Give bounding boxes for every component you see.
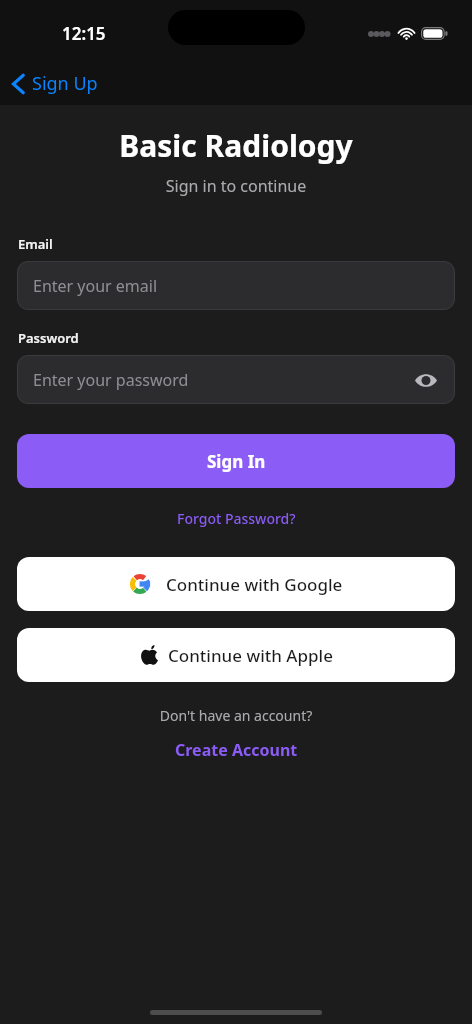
staticText: Email	[18, 235, 53, 253]
staticText: Continue with Apple	[168, 644, 333, 667]
staticText: Continue with Google	[166, 573, 343, 596]
button[interactable]: Continue with Apple	[17, 628, 455, 682]
button[interactable]: Show password	[409, 363, 443, 397]
staticText: 12:15	[62, 22, 106, 45]
button[interactable]: Continue with Google	[17, 557, 455, 611]
button[interactable]: Forgot Password?	[169, 506, 304, 531]
staticText: Don't have an account?	[0, 706, 472, 725]
staticText: Password	[18, 329, 79, 347]
staticText: Sign in to continue	[0, 175, 472, 197]
staticText: Enter your password	[33, 369, 189, 391]
button[interactable]: Create Account	[167, 736, 306, 764]
staticText: Enter your email	[33, 275, 158, 297]
button[interactable]: Enter your email	[17, 261, 455, 310]
staticText: Create Account	[175, 739, 298, 761]
staticText: Sign In	[207, 450, 266, 473]
button[interactable]: Enter your password	[17, 355, 455, 404]
staticText: Forgot Password?	[177, 509, 296, 528]
staticText: Basic Radiology	[0, 125, 472, 166]
staticText: Sign Up	[32, 71, 98, 96]
button[interactable]: Sign In	[17, 434, 455, 488]
button[interactable]: Sign Up	[0, 62, 472, 105]
